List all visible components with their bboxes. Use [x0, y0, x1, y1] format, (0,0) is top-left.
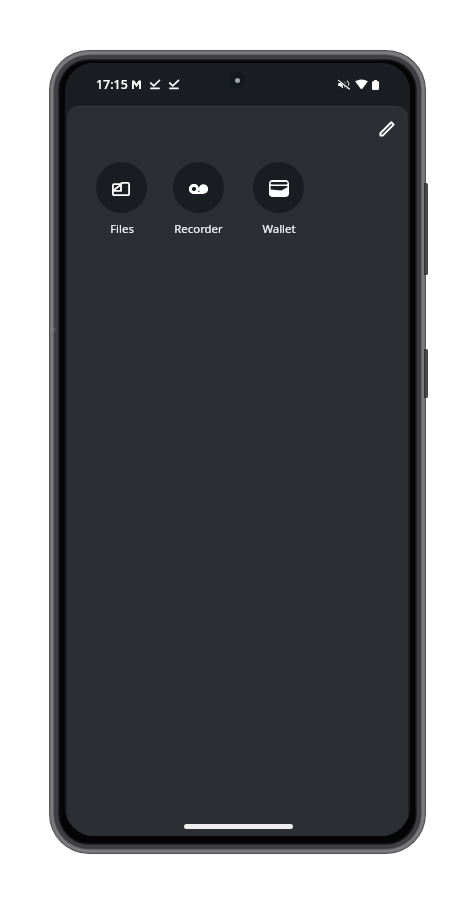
staticText: Wallet	[262, 221, 296, 237]
staticText: Recorder	[174, 221, 223, 237]
staticText: Files	[110, 221, 134, 237]
button[interactable]: Wallet	[253, 162, 304, 237]
button[interactable]: Edit	[369, 110, 405, 146]
button[interactable]: Files	[96, 162, 147, 237]
button[interactable]: Recorder	[173, 162, 224, 237]
staticText: 17:15	[96, 76, 128, 93]
